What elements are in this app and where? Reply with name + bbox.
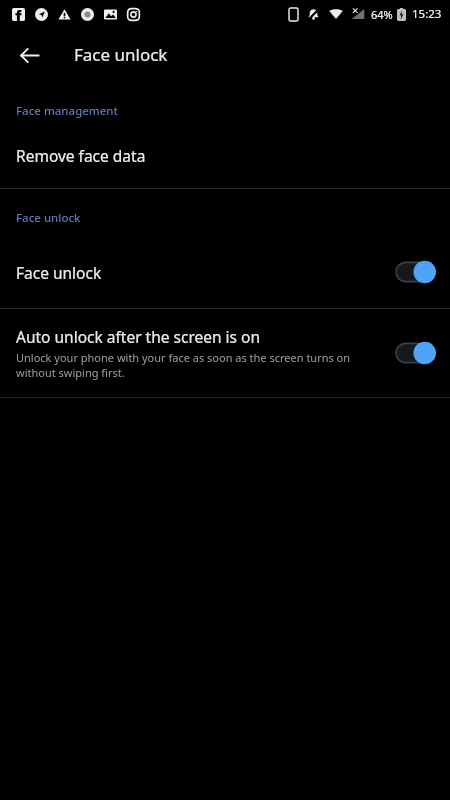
button[interactable]: Remove face data (0, 145, 450, 166)
staticText: 64% (371, 7, 393, 22)
staticText: Face unlock (16, 262, 102, 283)
staticText: Remove face data (16, 145, 146, 166)
button[interactable]: Toggle (396, 260, 436, 284)
button[interactable]: Toggle (396, 341, 436, 365)
staticText: Face unlock (74, 43, 168, 66)
staticText: Auto unlock after the screen is on (16, 326, 260, 347)
button[interactable]: Auto unlock after the screen is on (0, 309, 450, 397)
staticText: 15:23 (412, 6, 442, 22)
staticText: Face management (16, 103, 450, 119)
staticText: Unlock your phone with your face as soon… (16, 350, 386, 380)
button[interactable]: Face unlock (0, 252, 450, 292)
staticText: Face unlock (16, 210, 450, 226)
button[interactable]: Back (10, 36, 48, 74)
